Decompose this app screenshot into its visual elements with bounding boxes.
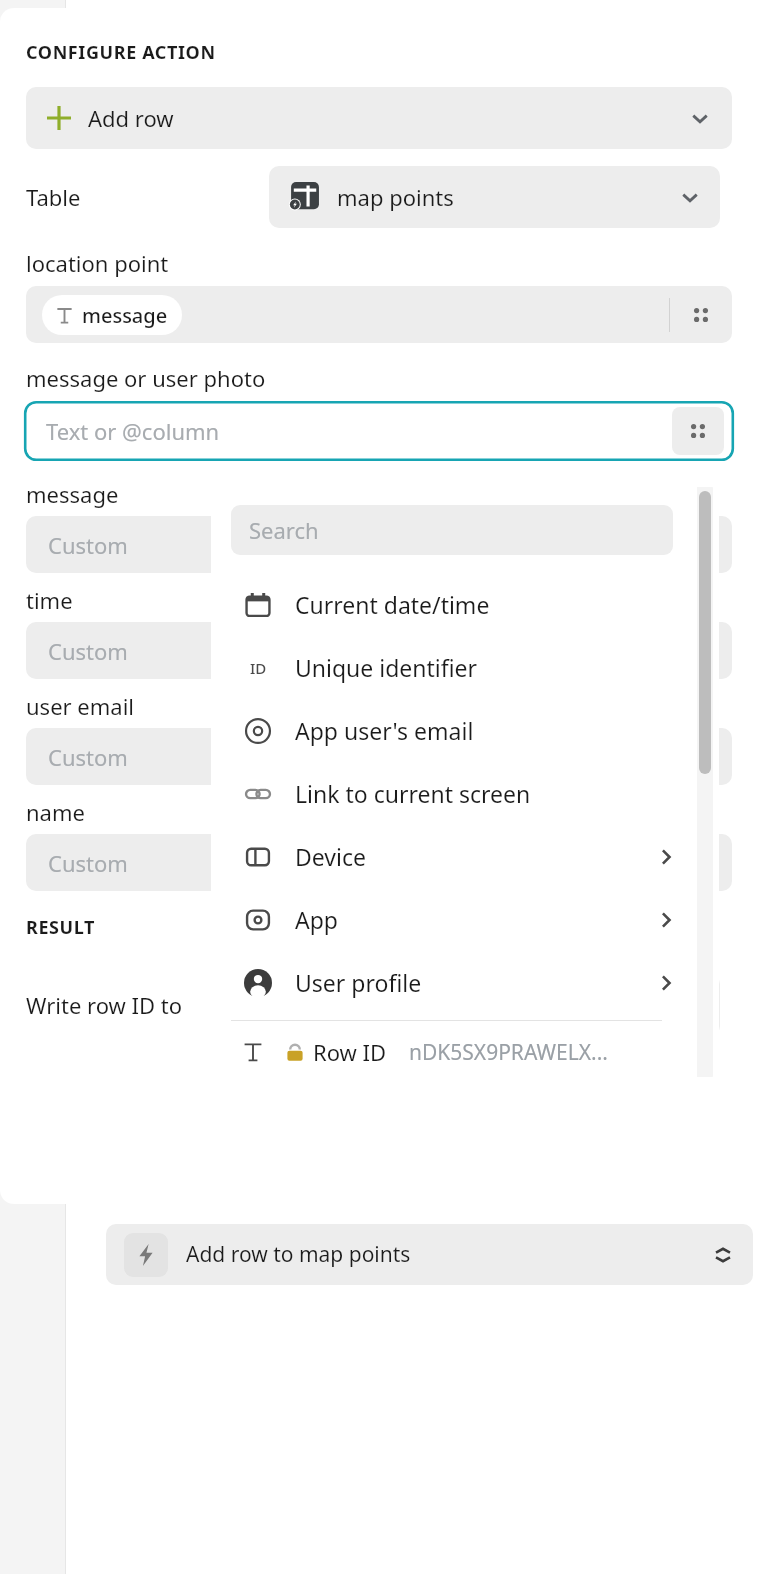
button[interactable]: Add row to map points bbox=[106, 1224, 753, 1285]
staticText: Custom bbox=[48, 848, 128, 878]
button[interactable]: Custom bbox=[26, 516, 732, 573]
staticText: Custom bbox=[48, 742, 128, 772]
button[interactable]: Link to current screen bbox=[211, 762, 719, 825]
button[interactable]: Search bbox=[231, 505, 673, 555]
staticText: message bbox=[82, 302, 168, 329]
button[interactable]: message bbox=[26, 286, 732, 343]
button[interactable]: More options bbox=[672, 407, 724, 455]
staticText: App user's email bbox=[295, 715, 474, 746]
staticText: Custom bbox=[48, 530, 128, 560]
staticText: Add row bbox=[88, 103, 174, 133]
button[interactable] bbox=[24, 401, 734, 461]
button[interactable]: User profile bbox=[211, 951, 719, 1014]
staticText: map points bbox=[337, 182, 454, 212]
staticText: message or user photo bbox=[26, 363, 266, 393]
button[interactable]: Custom bbox=[26, 834, 732, 891]
staticText: Write row ID to bbox=[26, 990, 183, 1020]
staticText: App bbox=[295, 904, 338, 935]
button[interactable] bbox=[269, 974, 720, 1036]
button[interactable]: Add row bbox=[26, 87, 732, 149]
staticText: Unique identifier bbox=[295, 652, 478, 683]
button[interactable]: Device bbox=[211, 825, 719, 888]
staticText: message bbox=[26, 479, 119, 509]
staticText: Link to current screen bbox=[295, 778, 531, 809]
staticText: Row ID bbox=[313, 1037, 387, 1067]
staticText: Table bbox=[26, 182, 81, 212]
staticText: Text or @column bbox=[46, 416, 220, 446]
staticText: User profile bbox=[295, 967, 422, 998]
staticText: Current date/time bbox=[295, 589, 490, 620]
button[interactable]: Custom bbox=[26, 728, 732, 785]
button[interactable]: Row ID bbox=[211, 1027, 719, 1077]
staticText: time bbox=[26, 585, 73, 615]
staticText: user email bbox=[26, 691, 135, 721]
button[interactable]: ID bbox=[211, 636, 719, 699]
staticText: nDK5SX9PRAWELX... bbox=[409, 1038, 608, 1067]
staticText: location point bbox=[26, 248, 169, 278]
button[interactable]: Custom bbox=[26, 622, 732, 679]
button[interactable]: Current date/time bbox=[211, 573, 719, 636]
staticText: CONFIGURE ACTION bbox=[26, 40, 216, 65]
staticText: Device bbox=[295, 841, 366, 872]
staticText: ID bbox=[250, 658, 267, 678]
staticText: name bbox=[26, 797, 85, 827]
button[interactable]: More options bbox=[670, 286, 732, 343]
button[interactable]: App user's email bbox=[211, 699, 719, 762]
button[interactable]: map points bbox=[269, 166, 720, 228]
staticText: RESULT bbox=[26, 915, 96, 940]
button[interactable]: App bbox=[211, 888, 719, 951]
staticText: Custom bbox=[48, 636, 128, 666]
staticText: Search bbox=[249, 515, 319, 545]
staticText: Add row to map points bbox=[186, 1240, 411, 1269]
